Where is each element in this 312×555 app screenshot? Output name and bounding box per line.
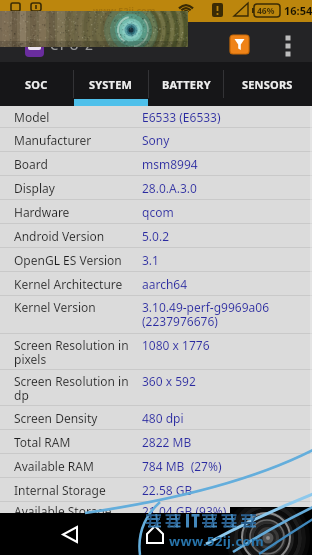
- button[interactable]: Kernel Architecture: [0, 272, 312, 296]
- staticText: 5.0.2: [142, 228, 170, 244]
- button[interactable]: Hardware: [0, 200, 312, 224]
- button[interactable]: OpenGL ES Version: [0, 248, 312, 272]
- button[interactable]: Available Storage: [14, 503, 312, 526]
- staticText: www.52ij.com: [93, 4, 156, 16]
- staticText: SOC: [25, 77, 48, 92]
- staticText: 3.1: [142, 252, 159, 268]
- staticText: 46%: [257, 5, 275, 17]
- button[interactable]: Total RAM: [0, 430, 312, 454]
- button[interactable]: Display: [0, 176, 312, 200]
- staticText: 22.58 GB: [142, 482, 193, 498]
- staticText: Sony: [142, 132, 170, 148]
- staticText: Available RAM: [14, 458, 142, 474]
- button[interactable]: Model: [0, 106, 312, 128]
- button[interactable]: SOC: [0, 62, 73, 106]
- staticText: 1080 x 1776: [142, 337, 210, 353]
- staticText: Kernel Architecture: [14, 276, 142, 292]
- staticText: Hardware: [14, 204, 142, 220]
- button[interactable]: Internal Storage: [0, 478, 312, 502]
- button[interactable]: Available RAM: [0, 454, 312, 478]
- staticText: Board: [14, 156, 142, 172]
- staticText: Internal Storage: [14, 482, 142, 498]
- staticText: 784 MB (27%): [142, 458, 222, 474]
- staticText: 16:54: [284, 3, 312, 18]
- button[interactable]: [132, 513, 180, 555]
- staticText: SENSORS: [242, 77, 293, 92]
- button[interactable]: Screen Resolution in pixels: [0, 334, 312, 370]
- staticText: E6533 (E6533): [142, 109, 221, 125]
- staticText: aarch64: [142, 276, 188, 292]
- staticText: Total RAM: [14, 434, 142, 450]
- button[interactable]: Manufacturer: [0, 128, 312, 152]
- staticText: Model: [14, 109, 142, 125]
- staticText: 3.10.49-perf-g9969a06 (2237976676): [142, 299, 270, 330]
- staticText: Screen Resolution in pixels: [14, 337, 142, 368]
- button[interactable]: SYSTEM: [74, 62, 148, 106]
- button[interactable]: BATTERY: [149, 62, 223, 106]
- button[interactable]: Kernel Version: [0, 296, 312, 334]
- staticText: qcom: [142, 204, 174, 220]
- staticText: msm8994: [142, 156, 198, 172]
- staticText: Android Version: [14, 228, 142, 244]
- staticText: Manufacturer: [14, 132, 142, 148]
- button[interactable]: Board: [0, 152, 312, 176]
- staticText: OpenGL ES Version: [14, 252, 142, 268]
- staticText: CPU Z: [50, 36, 95, 54]
- staticText: 2822 MB: [142, 434, 192, 450]
- staticText: BATTERY: [162, 77, 211, 92]
- staticText: Display: [14, 180, 142, 196]
- button[interactable]: Screen Resolution in dp: [0, 370, 312, 406]
- button[interactable]: [278, 30, 302, 54]
- staticText: 360 x 592: [142, 373, 196, 389]
- staticText: Screen Resolution in dp: [14, 373, 142, 404]
- button[interactable]: SENSORS: [224, 62, 311, 106]
- staticText: Available Storage: [14, 503, 142, 519]
- staticText: 480 dpi: [142, 410, 184, 426]
- staticText: 21.04 GB (93%): [142, 503, 227, 519]
- button[interactable]: Android Version: [0, 224, 312, 248]
- button[interactable]: [46, 513, 94, 555]
- staticText: Kernel Version: [14, 299, 142, 315]
- button[interactable]: [222, 513, 270, 555]
- staticText: www.52ij.com: [169, 532, 265, 550]
- staticText: SYSTEM: [89, 77, 133, 92]
- button[interactable]: Screen Density: [0, 406, 312, 430]
- button[interactable]: [230, 35, 249, 54]
- staticText: 28.0.A.3.0: [142, 180, 197, 196]
- staticText: Screen Density: [14, 410, 142, 426]
